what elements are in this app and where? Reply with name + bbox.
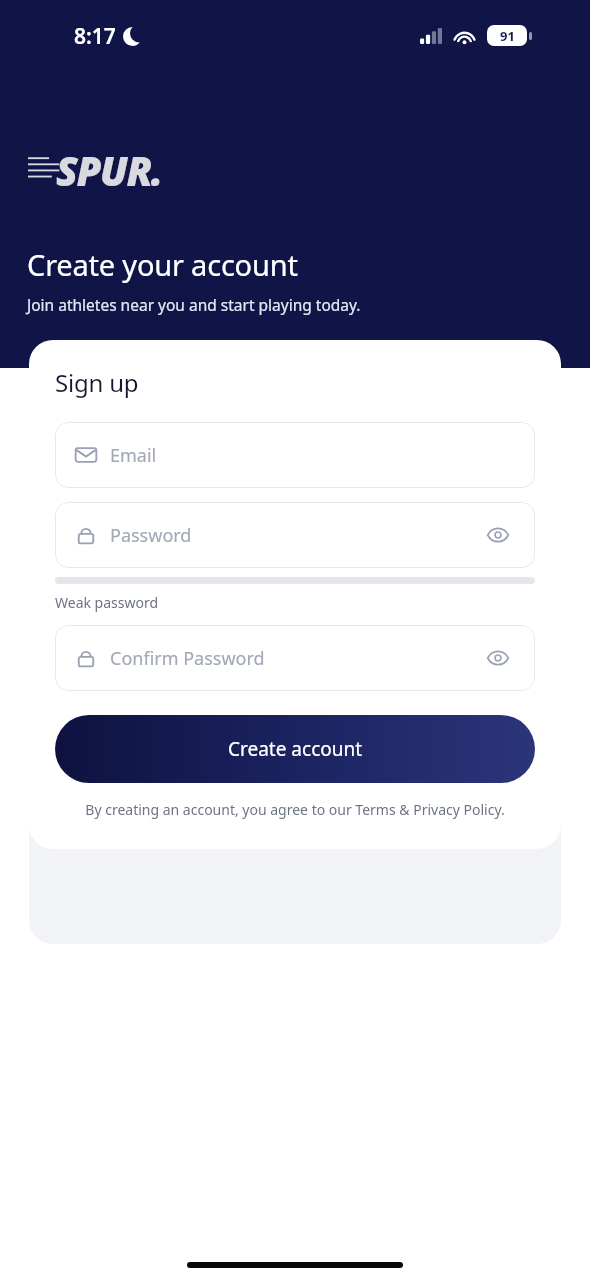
staticText: SPUR.	[56, 143, 162, 191]
staticText: Join athletes near you and start playing…	[27, 294, 361, 315]
staticText: Create your account	[27, 245, 298, 284]
staticText: Sign up	[55, 366, 139, 399]
staticText: Password	[110, 523, 192, 548]
staticText: Weak password	[55, 593, 159, 612]
staticText: Email	[110, 443, 157, 468]
staticText: 91	[500, 27, 515, 45]
button[interactable]: Show password	[481, 518, 515, 552]
button[interactable]: Show password	[481, 641, 515, 675]
staticText: By creating an account, you agree to our…	[56, 800, 534, 819]
button[interactable]: Password	[55, 502, 535, 568]
staticText: 8:17	[74, 22, 116, 51]
staticText: Create account	[228, 736, 363, 762]
staticText: Confirm Password	[110, 646, 265, 671]
button[interactable]: Email	[55, 422, 535, 488]
button[interactable]: Confirm Password	[55, 625, 535, 691]
button[interactable]: Create account	[55, 715, 535, 783]
